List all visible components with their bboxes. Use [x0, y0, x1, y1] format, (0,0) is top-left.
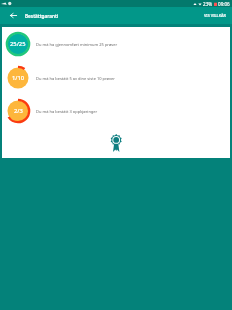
- button[interactable]: VIS VILLKÅR: [198, 8, 232, 23]
- staticText: 25/25: [10, 40, 26, 48]
- staticText: 23%: [203, 1, 213, 7]
- staticText: Bestättgaranti: [25, 13, 59, 19]
- staticText: Du må ha gjennomført minimum 25 prøver: [36, 42, 118, 47]
- staticText: 09:06: [218, 1, 230, 7]
- staticText: Du må ha bestått 5 av dine siste 10 prøv…: [36, 76, 115, 81]
- staticText: Du må ha bestått 3 oppkjøringer: [36, 109, 98, 114]
- staticText: 1/10: [12, 74, 25, 82]
- staticText: 2/3: [14, 107, 23, 115]
- button[interactable]: Back: [4, 7, 23, 24]
- staticText: VIS VILLKÅR: [204, 13, 227, 18]
